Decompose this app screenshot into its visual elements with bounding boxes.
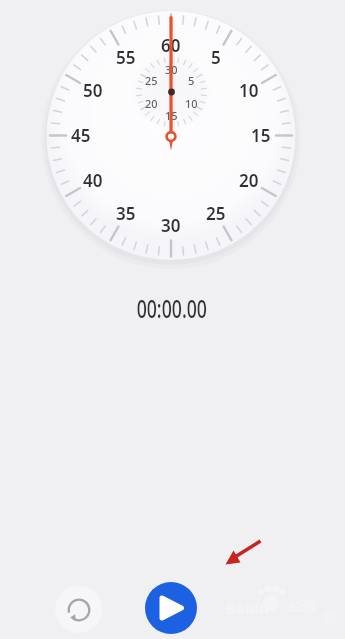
button[interactable] [145,582,197,634]
button[interactable] [55,586,102,633]
